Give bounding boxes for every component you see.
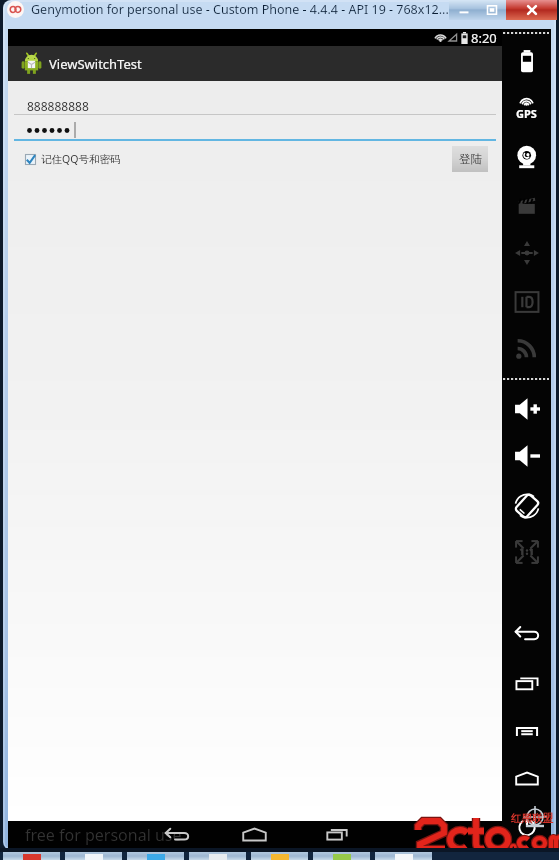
button[interactable]: Rotate xyxy=(507,487,546,525)
button[interactable]: Taskbar item xyxy=(189,852,246,860)
staticText: 记住QQ号和密码 xyxy=(41,152,121,166)
button[interactable]: Camera xyxy=(507,138,546,176)
button[interactable]: Accelerometer xyxy=(507,234,546,272)
button[interactable]: Back xyxy=(507,614,546,652)
button[interactable]: Identifiers xyxy=(507,283,546,321)
button[interactable]: Close xyxy=(506,0,557,20)
button[interactable]: Volume down xyxy=(507,437,546,475)
button[interactable]: Volume up xyxy=(507,390,546,428)
button[interactable]: 记住QQ号和密码 xyxy=(25,151,121,167)
button[interactable]: Taskbar item xyxy=(375,852,432,860)
button[interactable]: Minimize xyxy=(449,0,478,20)
staticText: 红黑联盟 xyxy=(511,812,553,825)
button[interactable]: Taskbar item xyxy=(65,852,122,860)
button[interactable]: Home xyxy=(237,821,271,848)
staticText: GPS xyxy=(516,106,537,121)
button[interactable]: Battery xyxy=(507,42,546,80)
button[interactable]: Network xyxy=(507,329,546,367)
staticText: 888888888 xyxy=(27,98,89,114)
button[interactable]: GPS xyxy=(507,89,546,127)
button[interactable]: 登陆 xyxy=(452,146,488,172)
button[interactable]: Taskbar item xyxy=(251,852,308,860)
button[interactable]: Taskbar item xyxy=(3,852,60,860)
button[interactable]: Taskbar item xyxy=(313,852,370,860)
staticText: Genymotion for personal use - Custom Pho… xyxy=(31,1,449,18)
button[interactable]: Menu xyxy=(507,712,546,750)
button[interactable]: Actual size xyxy=(507,533,546,571)
button[interactable]: Taskbar item xyxy=(127,852,184,860)
staticText: 登陆 xyxy=(459,152,482,166)
button[interactable]: Video capture xyxy=(507,187,546,225)
button[interactable]: Home xyxy=(507,759,546,797)
staticText: free for personal use xyxy=(25,824,182,846)
button[interactable]: Power xyxy=(507,808,546,846)
staticText: 8:20 xyxy=(471,29,497,46)
button[interactable]: Recents xyxy=(507,664,546,702)
button[interactable]: Back xyxy=(160,821,194,848)
button[interactable]: Recents xyxy=(320,821,354,848)
staticText: ViewSwitchTest xyxy=(49,55,142,73)
button[interactable]: Maximize xyxy=(478,0,506,20)
